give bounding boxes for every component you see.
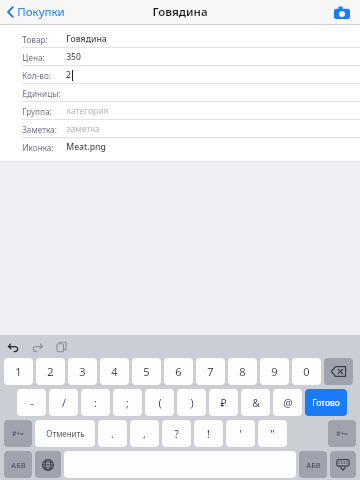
button[interactable]: ? (162, 420, 191, 447)
button[interactable]: Цена: (0, 48, 360, 66)
button[interactable]: 6 (164, 358, 193, 385)
staticText: : (94, 396, 97, 410)
staticText: / (62, 396, 66, 410)
button[interactable]: 9 (260, 358, 289, 385)
staticText: АБВ (11, 460, 26, 470)
staticText: Заметка: (22, 124, 57, 135)
button[interactable]: 2 (36, 358, 65, 385)
staticText: Говядина (152, 4, 208, 20)
staticText: заметка (66, 123, 100, 135)
button[interactable]: Единицы: (0, 84, 360, 102)
button[interactable]: ₽ (209, 389, 238, 416)
button[interactable]: / (49, 389, 78, 416)
staticText: ' (239, 427, 242, 441)
button[interactable]: Готово (305, 389, 347, 416)
staticText: #+= (336, 429, 348, 438)
staticText: @ (283, 396, 293, 410)
button[interactable]: , (130, 420, 159, 447)
button[interactable]: ; (113, 389, 142, 416)
staticText: 1 (15, 364, 22, 379)
staticText: 3 (79, 364, 86, 379)
staticText: ( (158, 396, 162, 410)
staticText: - (30, 396, 34, 410)
button[interactable]: - (17, 389, 46, 416)
staticText: Товар: (22, 34, 48, 45)
staticText: 0 (303, 364, 310, 379)
staticText: Готово (312, 397, 340, 409)
button[interactable]: Иконка: (0, 138, 360, 156)
staticText: 9 (271, 364, 278, 379)
button[interactable]: & (241, 389, 270, 416)
button[interactable]: ) (177, 389, 206, 416)
button[interactable]: Заметка: (0, 120, 360, 138)
button[interactable]: @ (273, 389, 302, 416)
staticText: 5 (143, 364, 150, 379)
button[interactable]: . (98, 420, 127, 447)
staticText: Кол-во: (22, 70, 51, 81)
staticText: ? (174, 427, 179, 441)
staticText: Группа: (22, 106, 52, 117)
button[interactable]: Кол-во: (0, 66, 360, 84)
button[interactable]: Группа: (0, 102, 360, 120)
staticText: Покупки (17, 4, 65, 20)
button[interactable]: Undo (5, 339, 21, 355)
button[interactable]: Change keyboard (35, 451, 61, 478)
button[interactable]: Отменить (35, 420, 95, 447)
button[interactable]: Redo (29, 339, 45, 355)
button[interactable]: 1 (4, 358, 33, 385)
button[interactable]: " (258, 420, 287, 447)
staticText: категория (66, 105, 109, 117)
button[interactable]: Camera (332, 2, 352, 22)
button[interactable]: Paste (53, 339, 69, 355)
staticText: Цена: (22, 52, 45, 63)
button[interactable]: ' (226, 420, 255, 447)
button[interactable]: Hide keyboard (330, 451, 356, 478)
staticText: 6 (175, 364, 182, 379)
staticText: АБВ (306, 460, 321, 470)
staticText: ! (207, 427, 210, 441)
button[interactable]: 4 (100, 358, 129, 385)
staticText: Говядина (66, 33, 107, 45)
button[interactable]: 0 (292, 358, 321, 385)
staticText: 7 (207, 364, 214, 379)
staticText: , (143, 427, 146, 441)
staticText: . (111, 427, 114, 441)
staticText: 2 (66, 69, 71, 81)
staticText: ; (126, 396, 129, 410)
button[interactable]: #+= (328, 420, 356, 447)
button[interactable]: 8 (228, 358, 257, 385)
button[interactable]: ( (145, 389, 174, 416)
staticText: Отменить (46, 428, 85, 439)
staticText: ₽ (220, 396, 227, 410)
button[interactable]: ! (194, 420, 223, 447)
button[interactable]: Покупки (5, 2, 67, 22)
button[interactable]: 3 (68, 358, 97, 385)
button[interactable]: 7 (196, 358, 225, 385)
button[interactable]: #+= (4, 420, 32, 447)
button[interactable]: Товар: (0, 30, 360, 48)
staticText: & (252, 396, 260, 410)
button[interactable]: 5 (132, 358, 161, 385)
staticText: 350 (66, 51, 81, 63)
staticText: 8 (239, 364, 246, 379)
button[interactable]: АБВ (4, 451, 32, 478)
button[interactable]: : (81, 389, 110, 416)
staticText: Meat.png (66, 141, 106, 153)
staticText: ) (190, 396, 194, 410)
button[interactable]: АБВ (299, 451, 327, 478)
staticText: Единицы: (22, 88, 61, 99)
staticText: #+= (12, 429, 24, 438)
staticText: 2 (47, 364, 54, 379)
staticText: 4 (111, 364, 118, 379)
button[interactable]: Backspace (324, 358, 353, 385)
staticText: " (270, 427, 275, 441)
staticText: Иконка: (22, 142, 54, 153)
